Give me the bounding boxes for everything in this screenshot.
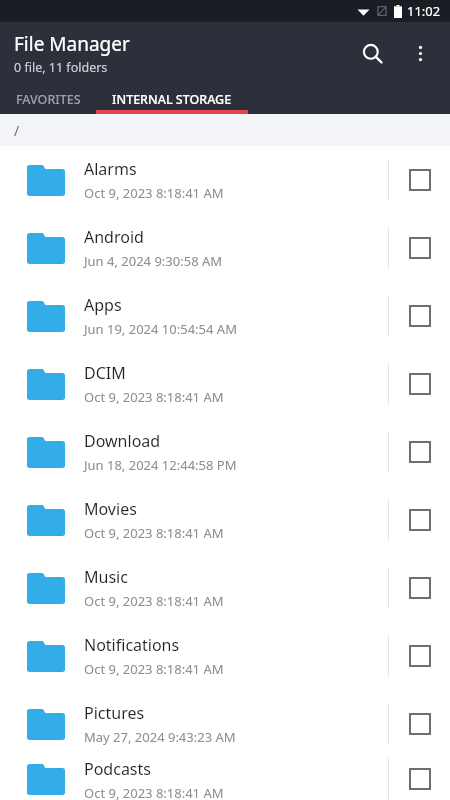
staticText: Oct 9, 2023 8:18:41 AM <box>84 184 224 202</box>
staticText: Music <box>84 566 128 588</box>
staticText: Oct 9, 2023 8:18:41 AM <box>84 524 224 542</box>
button[interactable]: Select Podcasts <box>389 758 450 800</box>
button[interactable]: / <box>0 114 450 146</box>
button[interactable]: Download <box>0 418 450 486</box>
button[interactable]: Search <box>348 29 396 77</box>
staticText: Oct 9, 2023 8:18:41 AM <box>84 388 224 406</box>
button[interactable]: Select Download <box>389 418 450 486</box>
button[interactable]: DCIM <box>0 350 450 418</box>
staticText: Download <box>84 430 161 452</box>
staticText: May 27, 2024 9:43:23 AM <box>84 728 236 746</box>
staticText: Apps <box>84 294 122 316</box>
staticText: Jun 19, 2024 10:54:54 AM <box>84 320 237 338</box>
staticText: Movies <box>84 498 137 520</box>
staticText: Pictures <box>84 702 145 724</box>
staticText: INTERNAL STORAGE <box>112 91 232 108</box>
staticText: FAVORITES <box>16 91 81 108</box>
staticText: Oct 9, 2023 8:18:41 AM <box>84 660 224 678</box>
button[interactable]: FAVORITES <box>0 84 96 114</box>
button[interactable]: Select DCIM <box>389 350 450 418</box>
staticText: 11:02 <box>407 2 441 20</box>
button[interactable]: Apps <box>0 282 450 350</box>
staticText: File Manager <box>14 31 130 57</box>
staticText: Notifications <box>84 634 180 656</box>
button[interactable]: Android <box>0 214 450 282</box>
button[interactable]: Select Music <box>389 554 450 622</box>
staticText: DCIM <box>84 362 126 384</box>
button[interactable]: Select Pictures <box>389 690 450 758</box>
staticText: / <box>14 121 20 140</box>
button[interactable]: Select Notifications <box>389 622 450 690</box>
button[interactable]: Select Movies <box>389 486 450 554</box>
button[interactable]: Pictures <box>0 690 450 758</box>
button[interactable]: Select Apps <box>389 282 450 350</box>
button[interactable]: Movies <box>0 486 450 554</box>
button[interactable]: Podcasts <box>0 758 450 800</box>
staticText: Podcasts <box>84 758 151 780</box>
staticText: Jun 18, 2024 12:44:58 PM <box>84 456 237 474</box>
staticText: 0 file, 11 folders <box>14 59 108 76</box>
button[interactable]: Music <box>0 554 450 622</box>
button[interactable]: Select Android <box>389 214 450 282</box>
staticText: Oct 9, 2023 8:18:41 AM <box>84 784 224 800</box>
button[interactable]: More options <box>396 29 444 77</box>
button[interactable]: Select Alarms <box>389 146 450 214</box>
staticText: Oct 9, 2023 8:18:41 AM <box>84 592 224 610</box>
button[interactable]: INTERNAL STORAGE <box>96 84 248 114</box>
staticText: Jun 4, 2024 9:30:58 AM <box>84 252 223 270</box>
staticText: Alarms <box>84 158 137 180</box>
button[interactable]: Alarms <box>0 146 450 214</box>
staticText: Android <box>84 226 144 248</box>
button[interactable]: Notifications <box>0 622 450 690</box>
